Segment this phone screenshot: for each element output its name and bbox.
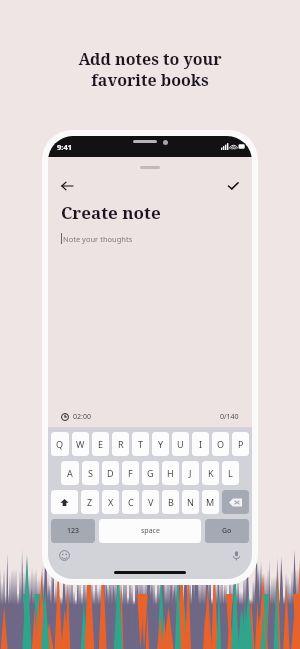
staticText: C [128, 496, 134, 508]
staticText: K [208, 467, 214, 479]
staticText: Q [56, 438, 64, 450]
button[interactable]: Backspace [222, 490, 249, 514]
staticText: X [108, 496, 114, 508]
staticText: Go [222, 526, 232, 536]
staticText: space [141, 526, 160, 536]
staticText: A [67, 467, 73, 479]
button[interactable]: Emoji keyboard [57, 548, 71, 562]
staticText: R [118, 438, 124, 450]
staticText: Z [87, 496, 93, 508]
button[interactable]: E [92, 432, 109, 456]
staticText: L [228, 467, 233, 479]
button[interactable]: Shift [51, 490, 78, 514]
button[interactable]: I [192, 432, 209, 456]
staticText: B [168, 496, 174, 508]
button[interactable]: V [142, 490, 159, 514]
button[interactable]: Save note [223, 176, 243, 196]
button[interactable]: B [162, 490, 179, 514]
staticText: H [167, 467, 174, 479]
button[interactable]: A [61, 461, 79, 485]
staticText: Create note [61, 201, 161, 224]
staticText: S [88, 467, 93, 479]
button[interactable]: Back [57, 176, 77, 196]
staticText: Add notes to your favorite books [78, 48, 222, 91]
button[interactable]: G [142, 461, 159, 485]
button[interactable]: W [72, 432, 89, 456]
staticText: 0/140 [220, 412, 239, 422]
button[interactable]: X [102, 490, 119, 514]
button[interactable]: Voice input [229, 548, 243, 562]
staticText: E [98, 438, 104, 450]
button[interactable]: Go [205, 519, 249, 543]
button[interactable]: Z [81, 490, 99, 514]
staticText: 02:00 [73, 412, 91, 422]
button[interactable]: H [162, 461, 179, 485]
button[interactable]: D [102, 461, 119, 485]
button[interactable]: F [122, 461, 139, 485]
button[interactable]: O [212, 432, 229, 456]
button[interactable]: P [232, 432, 249, 456]
button[interactable]: N [182, 490, 199, 514]
button[interactable]: T [132, 432, 149, 456]
button[interactable]: Q [51, 432, 69, 456]
button[interactable]: L [222, 461, 239, 485]
staticText: J [189, 467, 192, 479]
button[interactable]: M [202, 490, 219, 514]
staticText: V [148, 496, 154, 508]
staticText: U [177, 438, 184, 450]
staticText: O [217, 438, 225, 450]
staticText: D [107, 467, 114, 479]
staticText: 9:41 [57, 142, 72, 152]
staticText: G [147, 467, 154, 479]
button[interactable]: K [202, 461, 219, 485]
staticText: M [206, 496, 215, 508]
button[interactable]: R [112, 432, 129, 456]
staticText: Y [158, 438, 164, 450]
button[interactable]: 123 [51, 519, 95, 543]
button[interactable]: Y [152, 432, 169, 456]
staticText: F [128, 467, 133, 479]
staticText: N [187, 496, 194, 508]
button[interactable]: C [122, 490, 139, 514]
staticText: 123 [67, 526, 80, 536]
staticText: P [238, 438, 244, 450]
button[interactable]: S [82, 461, 99, 485]
staticText: I [199, 438, 203, 450]
staticText: W [76, 438, 85, 450]
button[interactable]: J [182, 461, 199, 485]
staticText: Note your thoughts [63, 234, 133, 244]
button[interactable]: space [99, 519, 201, 543]
button[interactable]: U [172, 432, 189, 456]
staticText: T [138, 438, 144, 450]
